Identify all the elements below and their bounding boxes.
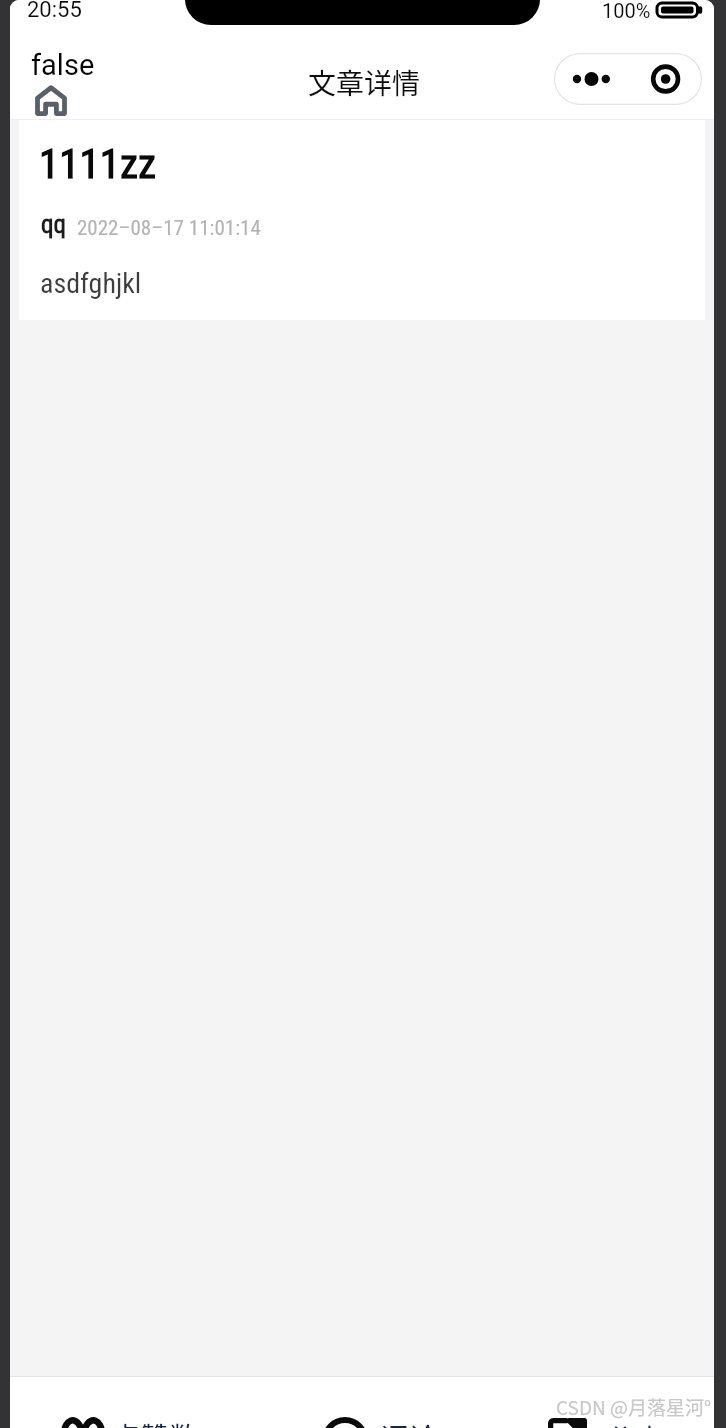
staticText: 评论 xyxy=(380,1416,439,1428)
staticText: 2022–08–17 11:01:14 xyxy=(77,216,261,241)
staticText: asdfghjkl xyxy=(40,267,142,300)
button[interactable]: 1111zz xyxy=(19,120,705,320)
button[interactable]: Like xyxy=(60,1416,199,1428)
staticText: qq xyxy=(41,210,67,239)
staticText: 1111zz xyxy=(39,140,156,188)
staticText: 文章详情 xyxy=(308,62,421,103)
button[interactable]: Share xyxy=(548,1418,665,1428)
staticText: 20:55 xyxy=(27,0,82,23)
button[interactable]: Comment xyxy=(322,1417,439,1428)
button[interactable]: More options xyxy=(554,53,702,105)
staticText: 分享 xyxy=(606,1417,665,1428)
staticText: CSDN @月落星河° xyxy=(556,1393,712,1421)
staticText: false xyxy=(31,48,95,82)
button[interactable]: Home xyxy=(36,86,66,115)
staticText: 点赞数 xyxy=(111,1415,199,1428)
staticText: 100% xyxy=(602,0,651,22)
